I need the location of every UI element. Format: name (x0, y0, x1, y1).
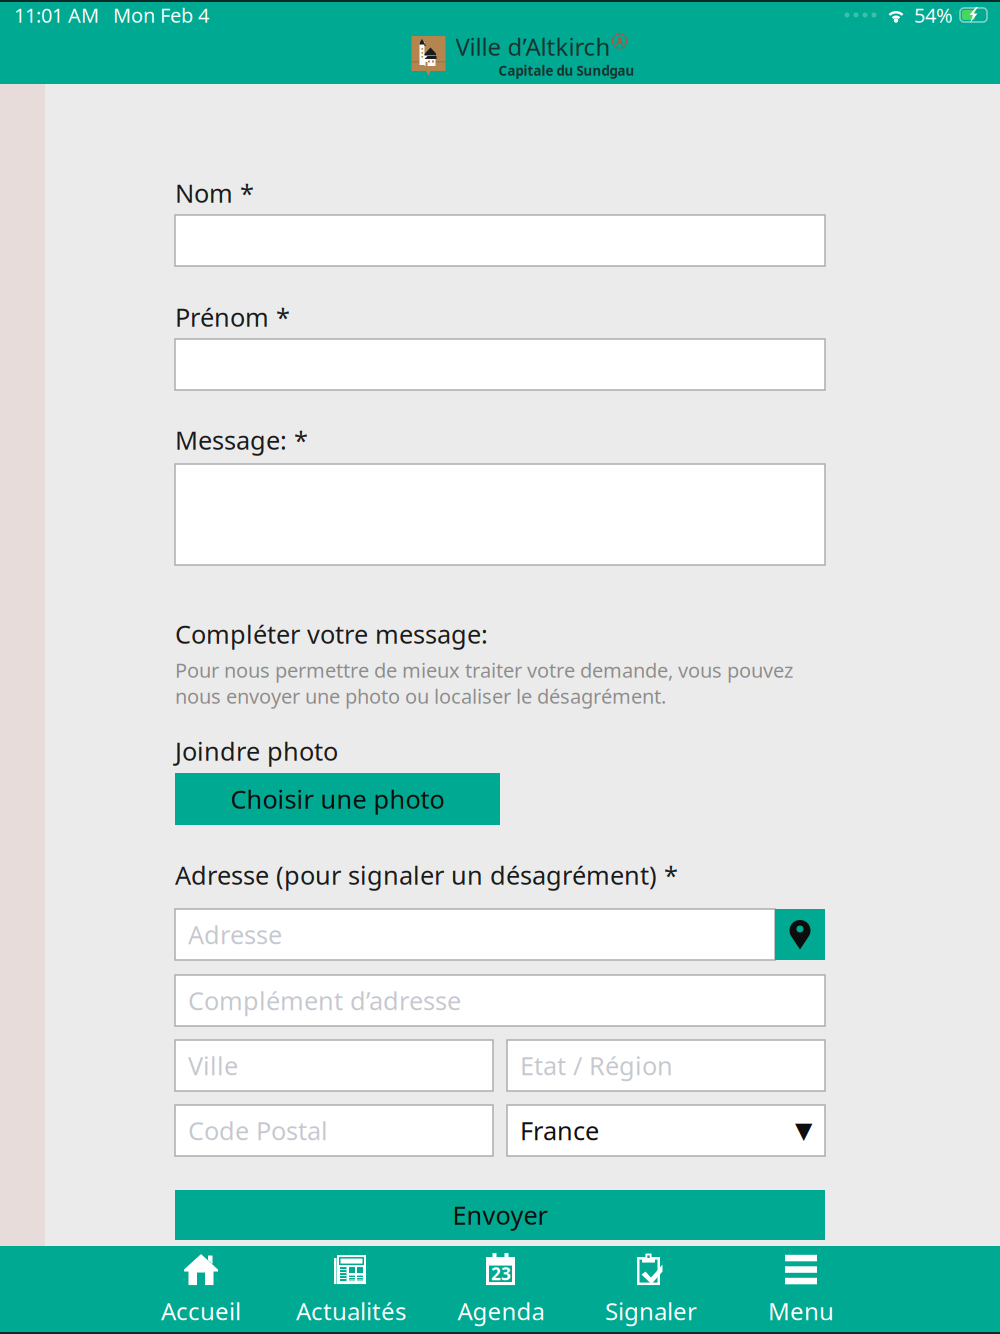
button[interactable]: 23 (426, 1245, 576, 1333)
staticText: Adresse (188, 918, 282, 951)
staticText: France (520, 1114, 599, 1147)
staticText: Complément d’adresse (188, 984, 461, 1017)
staticText: Agenda (457, 1295, 544, 1327)
staticText: nous envoyer une photo ou localiser le d… (175, 683, 666, 709)
button[interactable]: Signaler (576, 1245, 726, 1333)
staticText: Choisir une photo (230, 782, 444, 816)
staticText: 11:01 AM (14, 2, 99, 28)
staticText: Pour nous permettre de mieux traiter vot… (175, 657, 793, 683)
staticText: Actualités (296, 1295, 406, 1327)
staticText: Ville (188, 1049, 238, 1082)
staticText: Ville d’Altkirch (455, 31, 610, 62)
staticText: Compléter votre message: (175, 617, 488, 651)
staticText: Capitale du Sundgau (498, 62, 634, 79)
staticText: Prénom * (175, 300, 290, 334)
staticText: Nom * (175, 176, 254, 210)
button[interactable]: Accueil (126, 1245, 276, 1333)
staticText: Accueil (161, 1295, 241, 1327)
staticText: ▼ (795, 1118, 812, 1143)
button[interactable]: Envoyer (175, 1190, 825, 1240)
button[interactable]: France (507, 1105, 825, 1156)
button[interactable]: Choisir une photo (175, 773, 500, 825)
staticText: Mon Feb 4 (113, 2, 209, 28)
staticText: 23 (491, 1262, 511, 1285)
button[interactable]: Menu (726, 1245, 876, 1333)
staticText: Message: * (175, 423, 308, 457)
button[interactable]: Localiser sur la carte (775, 909, 825, 960)
button[interactable]: Actualités (276, 1245, 426, 1333)
staticText: 54% (914, 2, 953, 28)
staticText: Signaler (605, 1295, 697, 1327)
staticText: Code Postal (188, 1114, 328, 1147)
staticText: Ⓐ (611, 32, 627, 51)
staticText: Adresse (pour signaler un désagrément) * (175, 858, 678, 892)
staticText: Etat / Région (520, 1049, 673, 1082)
staticText: Envoyer (452, 1198, 547, 1232)
staticText: Menu (768, 1295, 834, 1327)
staticText: Joindre photo (175, 734, 338, 768)
